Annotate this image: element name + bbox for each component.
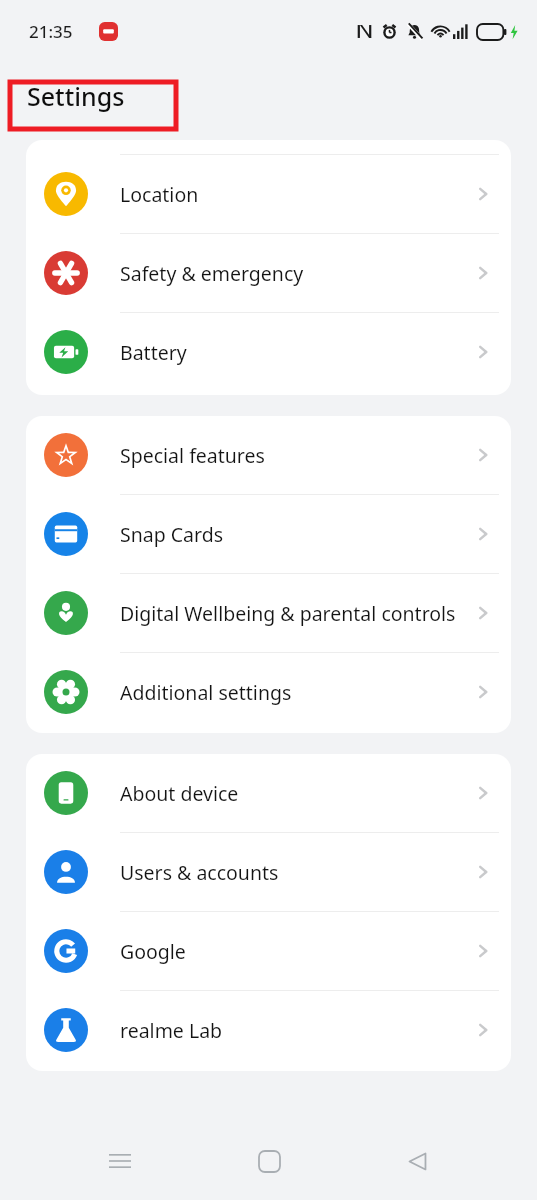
staticText: Battery bbox=[120, 339, 463, 366]
button[interactable]: Users & accounts bbox=[26, 833, 511, 911]
staticText: 21:35 bbox=[29, 20, 73, 43]
staticText: About device bbox=[120, 780, 463, 807]
staticText: Special features bbox=[120, 442, 463, 469]
staticText: Digital Wellbeing & parental controls bbox=[120, 600, 463, 627]
button[interactable]: Location bbox=[26, 155, 511, 233]
button[interactable]: Digital Wellbeing & parental controls bbox=[26, 574, 511, 652]
button[interactable]: Back bbox=[388, 1132, 446, 1190]
staticText: Users & accounts bbox=[120, 859, 463, 886]
button[interactable]: Recent apps bbox=[91, 1132, 149, 1190]
button[interactable]: Special features bbox=[26, 416, 511, 494]
button[interactable]: Safety & emergency bbox=[26, 234, 511, 312]
staticText: Location bbox=[120, 181, 463, 208]
button[interactable]: Google bbox=[26, 912, 511, 990]
staticText: Snap Cards bbox=[120, 521, 463, 548]
staticText: Additional settings bbox=[120, 679, 463, 706]
staticText: realme Lab bbox=[120, 1017, 463, 1044]
button[interactable]: Home bbox=[240, 1132, 298, 1190]
staticText: Safety & emergency bbox=[120, 260, 463, 287]
staticText: Google bbox=[120, 938, 463, 965]
button[interactable]: Snap Cards bbox=[26, 495, 511, 573]
button[interactable]: Battery bbox=[26, 313, 511, 391]
button[interactable]: Additional settings bbox=[26, 653, 511, 731]
button[interactable]: About device bbox=[26, 754, 511, 832]
staticText: Settings bbox=[27, 79, 125, 113]
button[interactable]: realme Lab bbox=[26, 991, 511, 1069]
